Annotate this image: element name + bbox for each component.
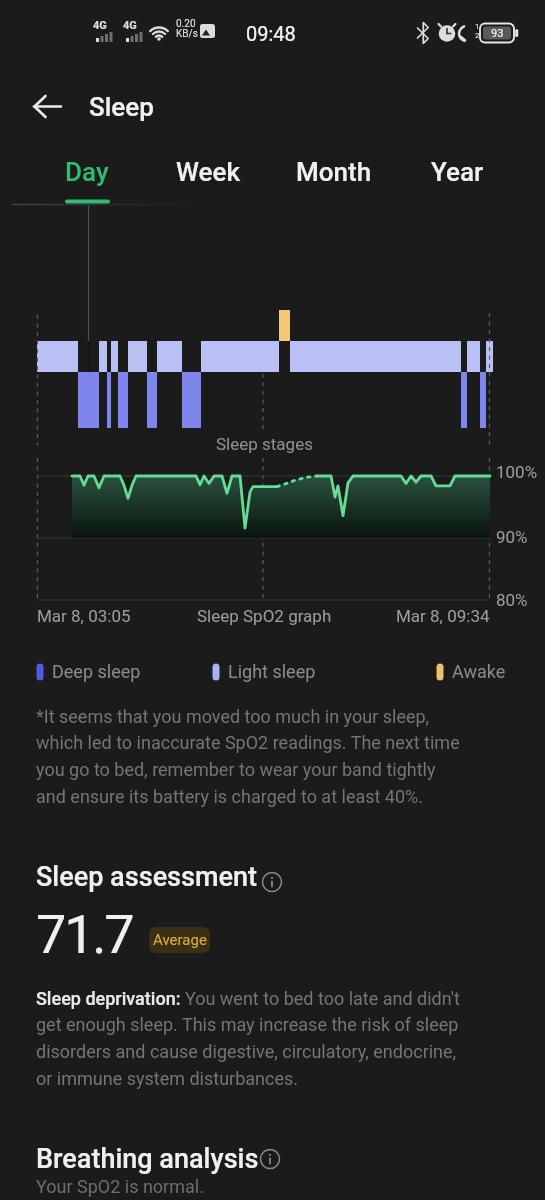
- staticText: 2: [475, 31, 480, 40]
- staticText: Sleep assessment: [36, 861, 258, 893]
- staticText: Mar 8, 09:34: [396, 606, 490, 626]
- button[interactable]: Day: [27, 145, 147, 199]
- button[interactable]: [256, 1145, 284, 1173]
- staticText: 71.7: [36, 903, 133, 966]
- button[interactable]: Week: [148, 145, 268, 199]
- staticText: Year: [431, 157, 484, 187]
- staticText: Average: [153, 931, 207, 949]
- staticText: Sleep: [89, 92, 154, 122]
- staticText: Month: [296, 157, 372, 187]
- staticText: 4G: [93, 19, 107, 32]
- staticText: Sleep deprivation: You went to bed too l…: [36, 988, 460, 1090]
- button[interactable]: [258, 868, 286, 896]
- staticText: Sleep stages: [216, 434, 313, 454]
- staticText: 1: [475, 22, 480, 31]
- staticText: Sleep SpO2 graph: [197, 606, 332, 626]
- staticText: Day: [65, 157, 109, 187]
- staticText: 4G: [123, 19, 137, 32]
- staticText: Mar 8, 03:05: [37, 606, 131, 626]
- staticText: Week: [176, 157, 240, 187]
- staticText: Breathing analysis: [36, 1143, 259, 1175]
- staticText: *It seems that you moved too much in you…: [36, 706, 460, 808]
- staticText: KB/s: [176, 28, 198, 40]
- button[interactable]: Year: [397, 145, 517, 199]
- staticText: 100%: [496, 462, 538, 482]
- staticText: 0.20: [176, 18, 196, 30]
- staticText: Deep sleep: [52, 661, 141, 682]
- staticText: 09:48: [246, 22, 296, 45]
- button[interactable]: [24, 84, 76, 130]
- staticText: Your SpO2 is normal.: [36, 1176, 204, 1197]
- staticText: 90%: [496, 527, 528, 547]
- staticText: Awake: [452, 661, 506, 682]
- staticText: Light sleep: [228, 661, 316, 682]
- staticText: 80%: [496, 590, 528, 610]
- staticText: 93: [491, 27, 504, 40]
- button[interactable]: Month: [274, 145, 394, 199]
